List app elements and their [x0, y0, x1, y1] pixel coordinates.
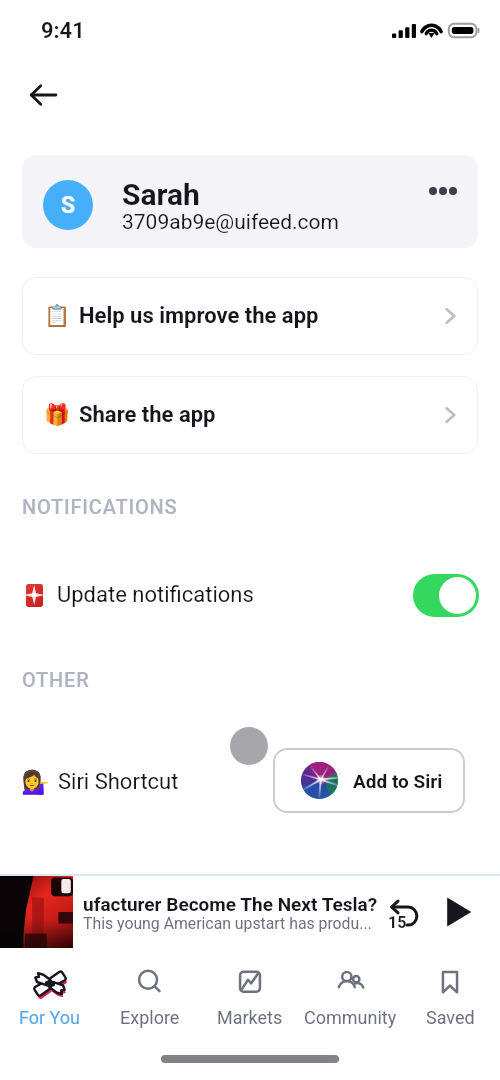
staticText: 📋: [44, 304, 71, 329]
button[interactable]: Update notifications: [0, 570, 500, 620]
button[interactable]: Explore: [100, 952, 200, 1036]
staticText: Share the app: [79, 402, 454, 428]
staticText: 🎁: [44, 403, 71, 428]
staticText: Community: [304, 1007, 397, 1028]
button[interactable]: 🎁: [22, 376, 478, 454]
staticText: Sarah: [122, 177, 200, 212]
button[interactable]: Back: [18, 70, 68, 120]
staticText: S: [61, 192, 76, 219]
staticText: For You: [19, 1007, 81, 1028]
button[interactable]: Markets: [200, 952, 300, 1036]
staticText: OTHER: [22, 668, 90, 691]
button[interactable]: More options: [419, 167, 467, 215]
staticText: ufacturer Become The Next Tesla?: [83, 893, 378, 915]
staticText: Explore: [120, 1007, 180, 1028]
staticText: Saved: [426, 1007, 475, 1028]
button[interactable]: Saved: [400, 952, 500, 1036]
staticText: This young American upstart has produ...: [83, 914, 372, 933]
button[interactable]: Rewind 15 seconds: [383, 891, 425, 933]
button[interactable]: S: [22, 155, 478, 248]
staticText: Siri Shortcut: [58, 769, 179, 795]
staticText: NOTIFICATIONS: [22, 495, 178, 518]
staticText: Update notifications: [57, 582, 413, 608]
staticText: 9:41: [41, 18, 85, 44]
button[interactable]: Community: [300, 952, 400, 1036]
staticText: 3709ab9e@uifeed.com: [122, 210, 339, 235]
staticText: Add to Siri: [353, 770, 443, 792]
button[interactable]: 💁‍♀️: [0, 760, 179, 804]
staticText: 15: [388, 913, 407, 932]
button[interactable]: 📋: [22, 277, 478, 355]
button[interactable]: Add to Siri: [273, 748, 465, 813]
button[interactable]: Play: [437, 891, 479, 933]
staticText: Markets: [217, 1007, 283, 1028]
staticText: Help us improve the app: [79, 303, 454, 329]
button[interactable]: For You: [0, 952, 100, 1036]
staticText: 💁‍♀️: [21, 769, 50, 796]
